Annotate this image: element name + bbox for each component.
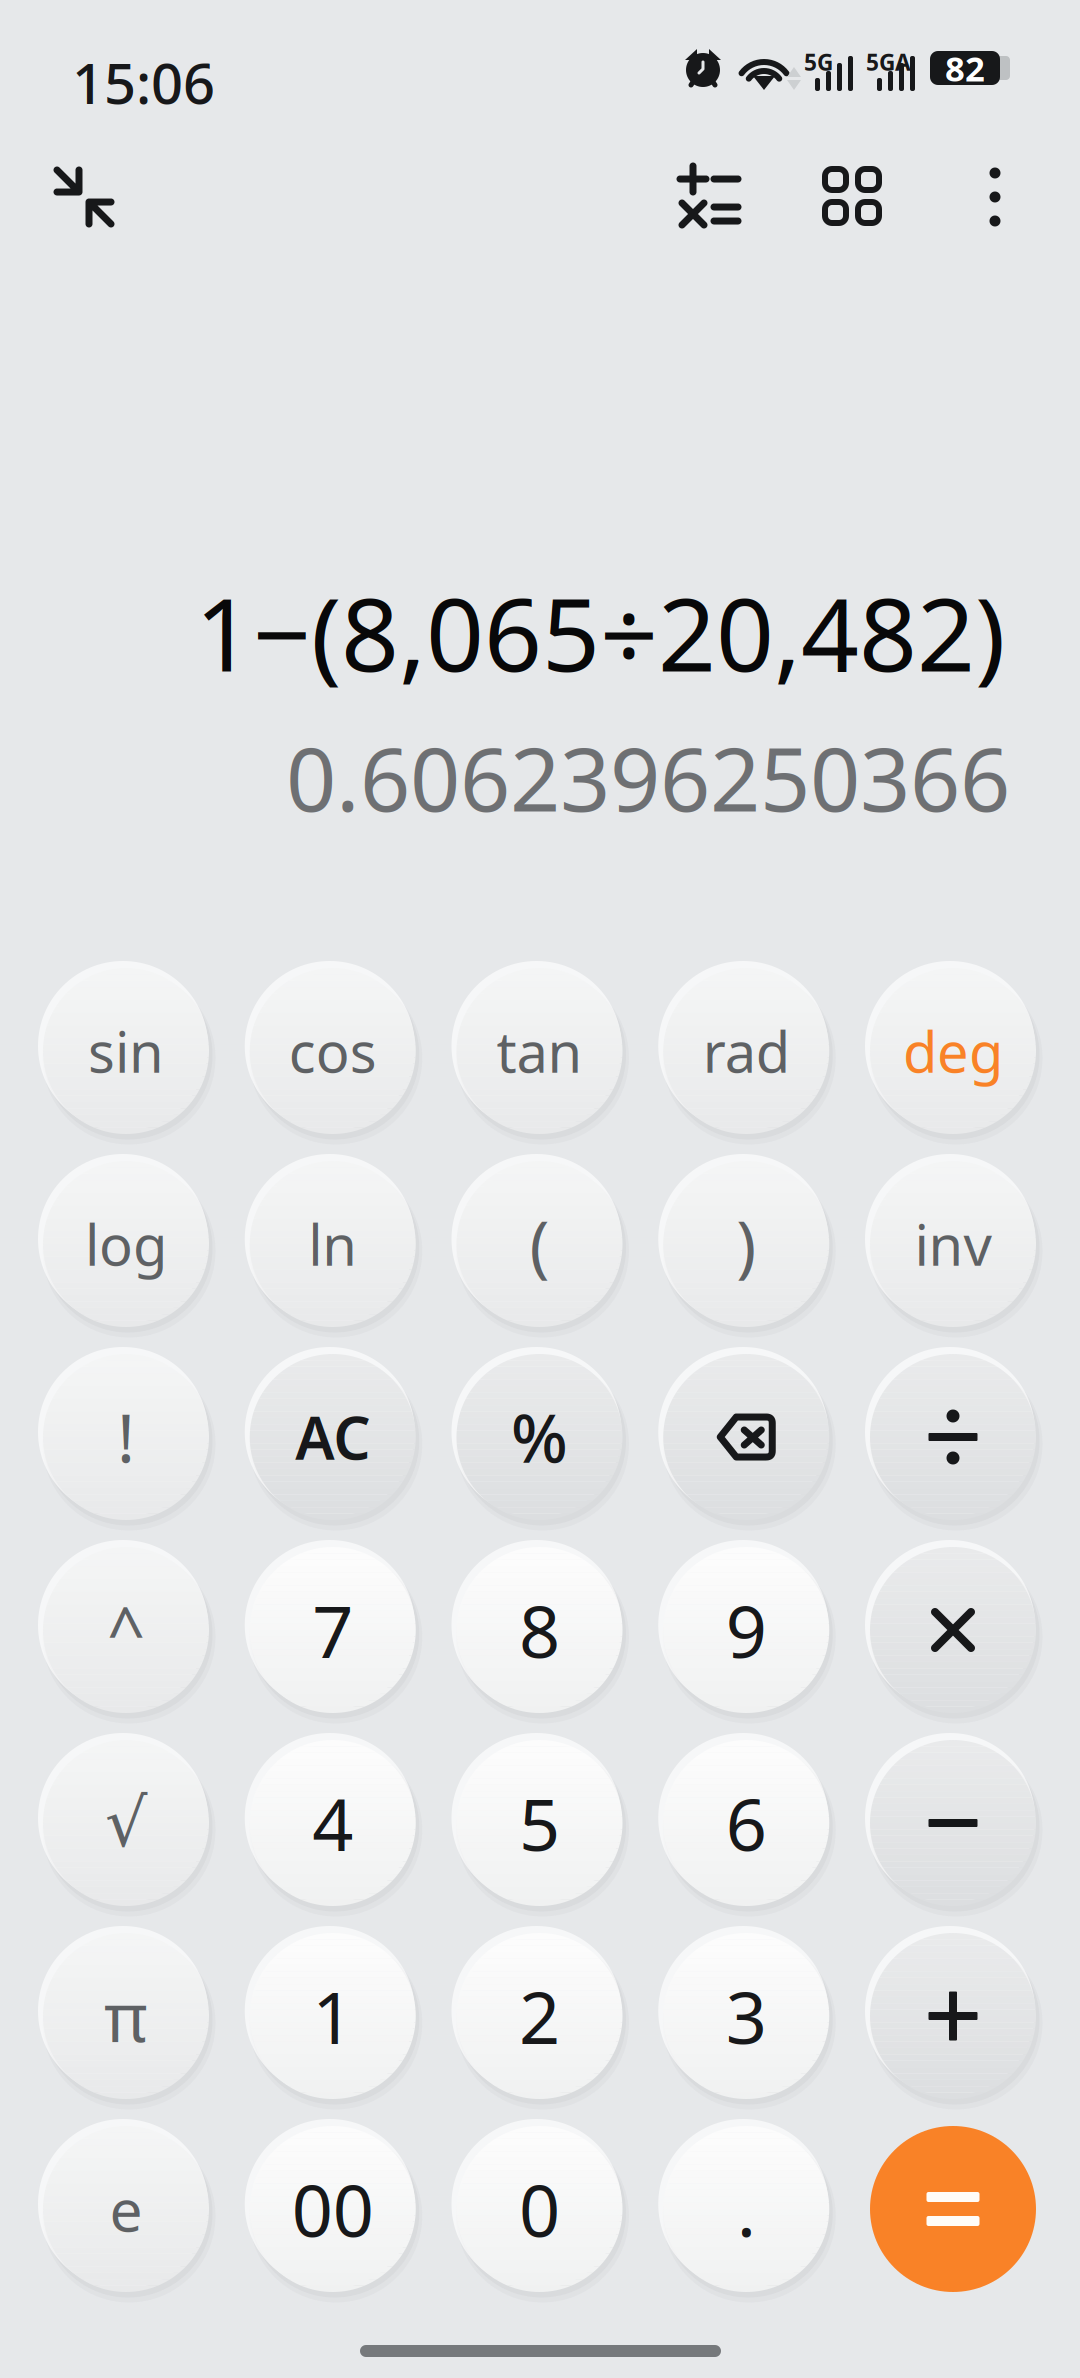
button[interactable]: 00 xyxy=(250,2126,416,2292)
button[interactable]: Equals xyxy=(870,2126,1036,2292)
staticText: AC xyxy=(295,1398,370,1476)
button[interactable]: ) xyxy=(663,1161,829,1327)
staticText: 5G xyxy=(804,47,833,77)
button[interactable]: rad xyxy=(663,968,829,1134)
button[interactable]: Divide xyxy=(870,1354,1036,1520)
button[interactable]: 8 xyxy=(456,1547,622,1713)
button[interactable]: Plus xyxy=(870,1933,1036,2099)
staticText: cos xyxy=(289,1014,377,1088)
staticText: 00 xyxy=(292,2161,374,2257)
button[interactable]: 0 xyxy=(456,2126,622,2292)
button[interactable]: % xyxy=(456,1354,622,1520)
button[interactable]: inv xyxy=(870,1161,1036,1327)
staticText: sin xyxy=(88,1014,164,1088)
button[interactable]: More options xyxy=(935,137,1055,257)
staticText: 7 xyxy=(312,1582,353,1678)
button[interactable]: 7 xyxy=(250,1547,416,1713)
staticText: 9 xyxy=(726,1582,767,1678)
staticText: 8 xyxy=(519,1582,560,1678)
button[interactable]: History xyxy=(792,137,912,257)
staticText: ) xyxy=(736,1200,756,1288)
button[interactable]: . xyxy=(663,2126,829,2292)
button[interactable]: cos xyxy=(250,968,416,1134)
staticText: % xyxy=(511,1393,568,1481)
button[interactable]: ( xyxy=(456,1161,622,1327)
button[interactable]: ^ xyxy=(43,1547,209,1713)
staticText: 2 xyxy=(519,1968,560,2064)
staticText: 15:06 xyxy=(72,45,215,119)
button[interactable]: Minus xyxy=(870,1740,1036,1906)
staticText: 5GA xyxy=(866,47,911,77)
staticText: . xyxy=(737,2161,756,2257)
button[interactable]: π xyxy=(43,1933,209,2099)
button[interactable]: Collapse xyxy=(24,137,144,257)
button[interactable]: √ xyxy=(43,1740,209,1906)
staticText: inv xyxy=(914,1207,991,1281)
staticText: log xyxy=(85,1207,167,1281)
button[interactable]: ln xyxy=(250,1161,416,1327)
staticText: ln xyxy=(308,1207,357,1281)
staticText: 82 xyxy=(945,45,985,91)
button[interactable]: ! xyxy=(43,1354,209,1520)
button[interactable]: e xyxy=(43,2126,209,2292)
staticText: tan xyxy=(496,1014,582,1088)
staticText: e xyxy=(109,2170,142,2248)
button[interactable]: Multiply xyxy=(870,1547,1036,1713)
staticText: √ xyxy=(105,1785,147,1861)
staticText: 0.6062396250366 xyxy=(286,719,1010,836)
button[interactable]: 2 xyxy=(456,1933,622,2099)
staticText: ^ xyxy=(107,1586,145,1674)
staticText: ! xyxy=(117,1393,135,1481)
button[interactable]: 5 xyxy=(456,1740,622,1906)
staticText: 4 xyxy=(312,1775,353,1871)
button[interactable]: 3 xyxy=(663,1933,829,2099)
staticText: 6 xyxy=(726,1775,767,1871)
button[interactable]: 6 xyxy=(663,1740,829,1906)
button[interactable]: Converter xyxy=(649,136,769,256)
staticText: deg xyxy=(903,1014,1003,1088)
staticText: ( xyxy=(529,1200,549,1288)
button[interactable]: sin xyxy=(43,968,209,1134)
button[interactable]: AC xyxy=(250,1354,416,1520)
staticText: π xyxy=(104,1972,148,2060)
button[interactable]: tan xyxy=(456,968,622,1134)
staticText: rad xyxy=(703,1014,790,1088)
staticText: 0 xyxy=(519,2161,560,2257)
button[interactable]: deg xyxy=(870,968,1036,1134)
staticText: 3 xyxy=(726,1968,767,2064)
staticText: 5 xyxy=(519,1775,560,1871)
staticText: 1−(8,065÷20,482) xyxy=(195,565,1005,700)
button[interactable]: Backspace xyxy=(663,1354,829,1520)
button[interactable]: 9 xyxy=(663,1547,829,1713)
staticText: 1 xyxy=(312,1968,353,2064)
button[interactable]: log xyxy=(43,1161,209,1327)
button[interactable]: 1 xyxy=(250,1933,416,2099)
button[interactable]: 4 xyxy=(250,1740,416,1906)
